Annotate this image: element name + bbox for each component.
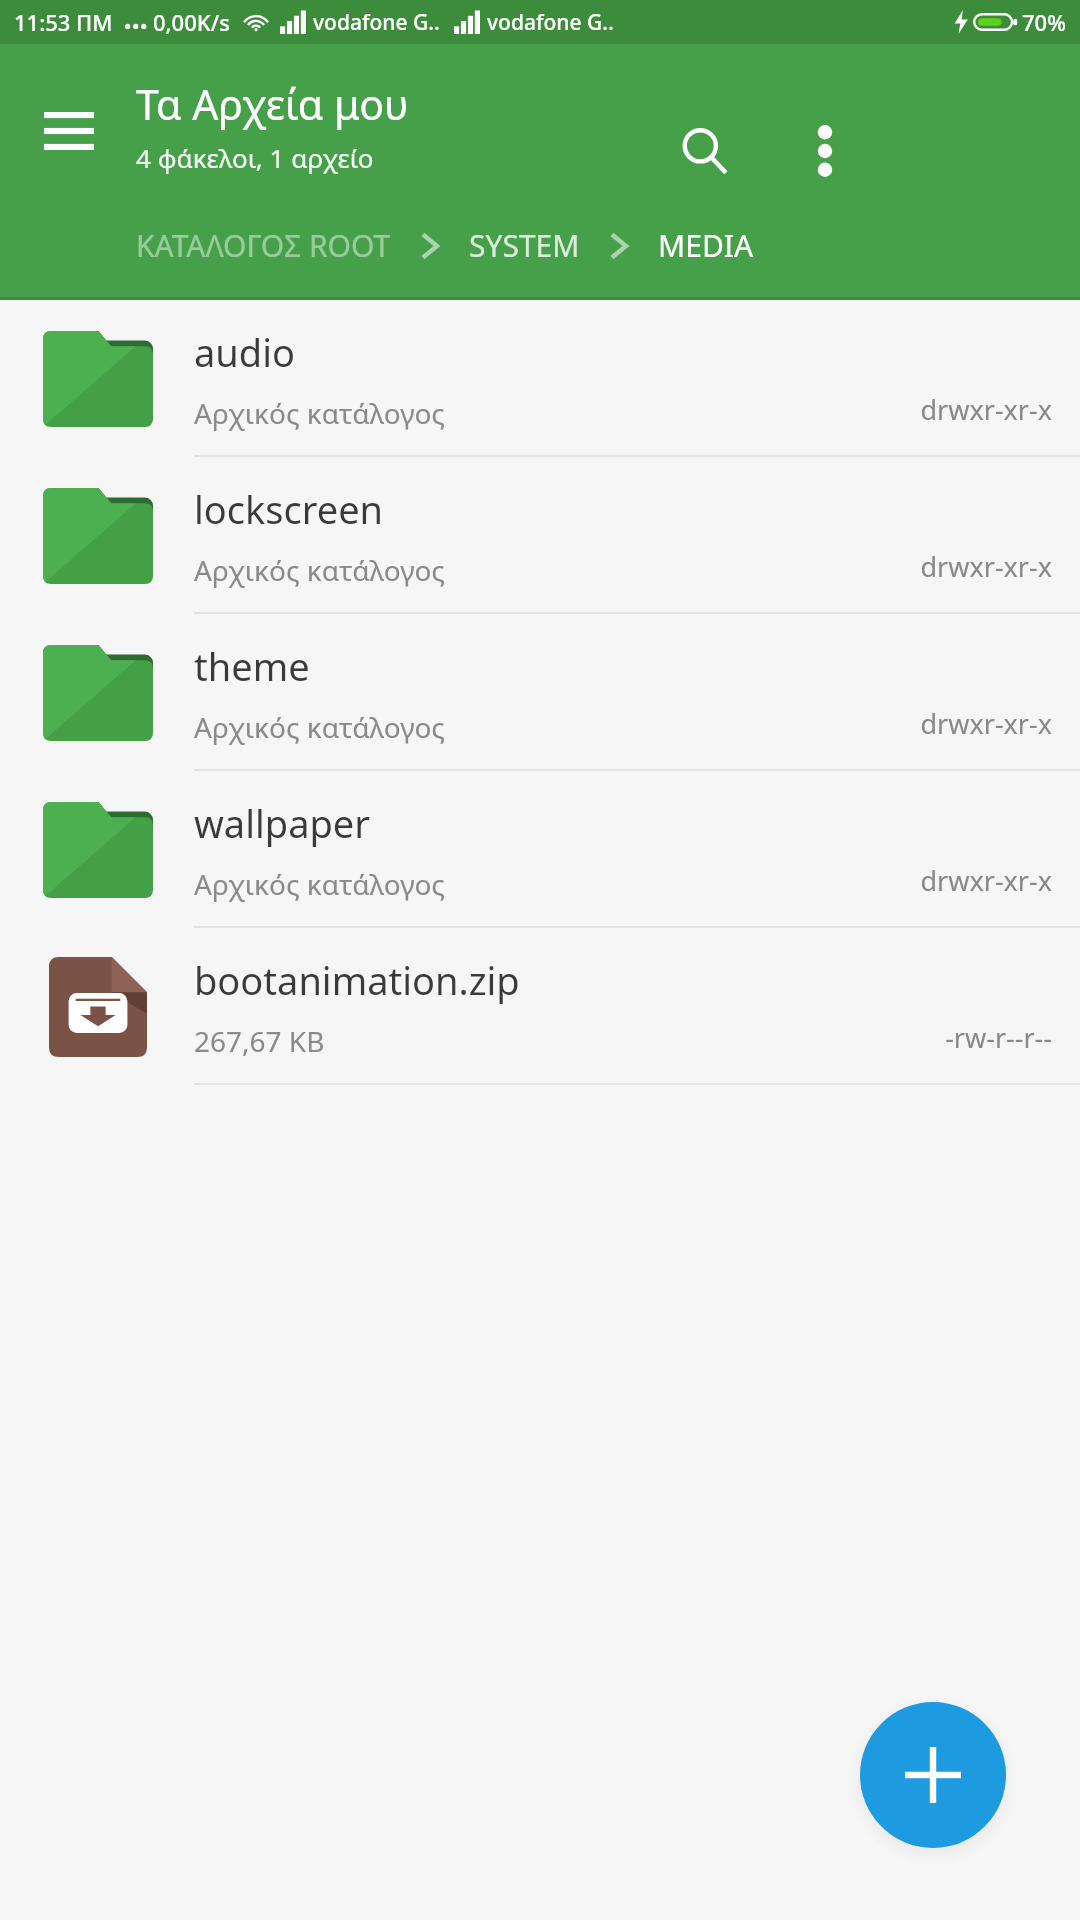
- button[interactable]: MEDIA: [658, 225, 754, 266]
- staticText: SYSTEM: [469, 225, 580, 266]
- staticText: drwxr-xr-x: [920, 862, 1052, 899]
- staticText: lockscreen: [194, 483, 384, 535]
- staticText: vodafone G..: [313, 8, 440, 37]
- staticText: -rw-r--r--: [945, 1019, 1052, 1056]
- button[interactable]: Open navigation drawer: [34, 96, 104, 166]
- staticText: Αρχικός κατάλογος: [194, 394, 445, 432]
- staticText: drwxr-xr-x: [920, 548, 1052, 585]
- staticText: drwxr-xr-x: [920, 705, 1052, 742]
- staticText: MEDIA: [658, 225, 754, 266]
- staticText: wallpaper: [194, 797, 370, 849]
- staticText: 267,67 KB: [194, 1022, 325, 1060]
- staticText: Αρχικός κατάλογος: [194, 708, 445, 746]
- staticText: Τα Αρχεία μου: [136, 76, 409, 132]
- staticText: audio: [194, 326, 295, 378]
- staticText: Αρχικός κατάλογος: [194, 551, 445, 589]
- staticText: drwxr-xr-x: [920, 391, 1052, 428]
- button[interactable]: audio: [0, 300, 1080, 457]
- button[interactable]: wallpaper: [0, 771, 1080, 928]
- button[interactable]: bootanimation.zip: [0, 928, 1080, 1085]
- staticText: vodafone G..: [487, 8, 614, 37]
- staticText: bootanimation.zip: [194, 954, 520, 1006]
- staticText: theme: [194, 640, 310, 692]
- button[interactable]: More options: [770, 96, 880, 206]
- staticText: 11:53 ΠΜ: [14, 7, 113, 37]
- button[interactable]: lockscreen: [0, 457, 1080, 614]
- staticText: Αρχικός κατάλογος: [194, 865, 445, 903]
- button[interactable]: Search: [650, 96, 760, 206]
- staticText: 70%: [1022, 7, 1066, 37]
- staticText: 4 φάκελοι, 1 αρχείο: [136, 140, 374, 175]
- button[interactable]: theme: [0, 614, 1080, 771]
- staticText: ΚΑΤΑΛΟΓΟΣ ROOT: [136, 225, 391, 266]
- button[interactable]: SYSTEM: [469, 225, 580, 266]
- button[interactable]: Add: [860, 1702, 1006, 1848]
- staticText: 0,00K/s: [153, 7, 230, 37]
- button[interactable]: ΚΑΤΑΛΟΓΟΣ ROOT: [136, 225, 391, 266]
